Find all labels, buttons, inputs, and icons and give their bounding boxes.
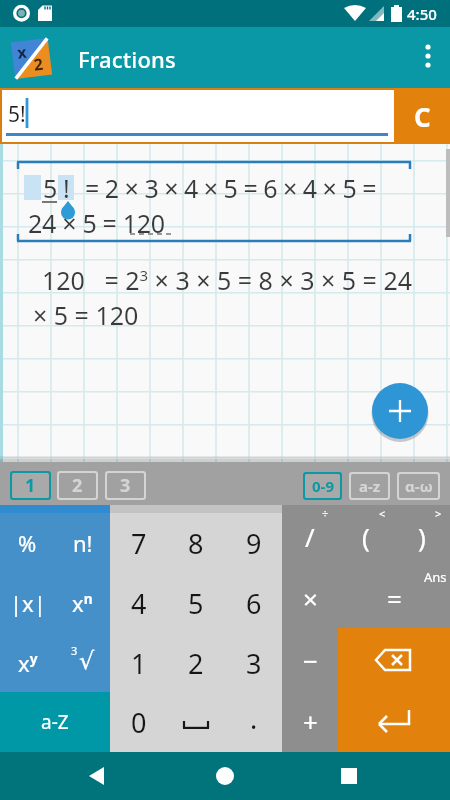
- staticText: α-ω: [405, 476, 433, 496]
- staticText: 5: [188, 585, 204, 622]
- staticText: (: [362, 519, 370, 554]
- button[interactable]: xn: [55, 573, 110, 633]
- button[interactable]: /: [282, 505, 338, 567]
- button[interactable]: [410, 37, 446, 79]
- staticText: 24 × 5 = 120: [28, 206, 165, 240]
- staticText: 3: [246, 645, 262, 682]
- staticText: 3: [71, 643, 78, 658]
- button[interactable]: 0-9: [303, 472, 342, 500]
- staticText: !: [63, 171, 70, 205]
- staticText: ×: [303, 581, 318, 616]
- button[interactable]: 4: [110, 573, 167, 633]
- staticText: xn: [72, 588, 93, 618]
- staticText: n!: [73, 528, 93, 558]
- button[interactable]: [372, 383, 428, 439]
- staticText: =: [387, 581, 402, 616]
- staticText: .: [250, 700, 258, 737]
- staticText: ÷: [322, 506, 329, 521]
- staticText: 5: [43, 171, 58, 205]
- staticText: 6: [246, 585, 262, 622]
- staticText: 9: [246, 525, 262, 562]
- button[interactable]: C: [394, 88, 450, 144]
- staticText: 5!: [8, 100, 26, 129]
- staticText: = 2 × 3 × 4 × 5 = 6 × 4 × 5 =: [85, 171, 377, 205]
- button[interactable]: 1: [110, 633, 167, 693]
- button[interactable]: 3: [105, 471, 146, 500]
- staticText: Fractions: [78, 44, 176, 74]
- button[interactable]: 6: [225, 573, 282, 633]
- staticText: >: [435, 506, 442, 521]
- button[interactable]: [75, 752, 123, 800]
- button[interactable]: a-z: [349, 472, 390, 500]
- staticText: C: [414, 99, 431, 134]
- button[interactable]: (: [338, 505, 394, 567]
- button[interactable]: α-ω: [397, 472, 440, 500]
- staticText: Ans: [424, 568, 447, 586]
- button[interactable]: 7: [110, 513, 167, 573]
- staticText: 120 = 23 × 3 × 5 = 8 × 3 × 5 = 24: [42, 263, 412, 297]
- button[interactable]: |x|: [0, 573, 55, 633]
- staticText: 4:50: [407, 4, 437, 24]
- staticText: 7: [131, 525, 147, 562]
- button[interactable]: xy: [0, 633, 55, 693]
- button[interactable]: +: [282, 690, 338, 752]
- staticText: 8: [188, 525, 204, 562]
- button[interactable]: [201, 752, 249, 800]
- button[interactable]: 8: [167, 513, 224, 573]
- button[interactable]: 2: [167, 633, 224, 693]
- staticText: x: [16, 41, 28, 64]
- staticText: 1: [25, 473, 36, 498]
- staticText: × 5 = 120: [33, 298, 139, 332]
- button[interactable]: ×: [282, 567, 338, 629]
- button[interactable]: %: [0, 513, 55, 573]
- button[interactable]: 1: [10, 471, 51, 500]
- staticText: 3: [120, 473, 131, 498]
- button[interactable]: 5: [167, 573, 224, 633]
- staticText: |x|: [10, 588, 46, 618]
- staticText: 2: [32, 53, 45, 76]
- button[interactable]: 0: [110, 692, 167, 752]
- staticText: 0-9: [312, 476, 334, 496]
- staticText: a-z: [359, 476, 381, 496]
- staticText: +: [303, 704, 318, 739]
- button[interactable]: −: [282, 629, 338, 691]
- button[interactable]: 3: [225, 633, 282, 693]
- button[interactable]: [325, 752, 373, 800]
- staticText: √: [79, 647, 95, 675]
- staticText: a-Z: [41, 709, 69, 735]
- button[interactable]: √: [55, 633, 110, 693]
- button[interactable]: 2: [57, 471, 98, 500]
- button[interactable]: a-Z: [0, 692, 110, 752]
- staticText: 0: [131, 704, 147, 741]
- staticText: −: [303, 643, 318, 678]
- staticText: ): [418, 519, 426, 554]
- button[interactable]: [167, 692, 224, 752]
- staticText: 1: [131, 645, 147, 682]
- button[interactable]: n!: [55, 513, 110, 573]
- button[interactable]: [338, 629, 450, 691]
- button[interactable]: 9: [225, 513, 282, 573]
- button[interactable]: ): [394, 505, 450, 567]
- staticText: 2: [188, 645, 204, 682]
- staticText: %: [18, 528, 37, 558]
- staticText: 4: [131, 585, 147, 622]
- button[interactable]: [338, 690, 450, 752]
- staticText: /: [305, 519, 315, 554]
- button[interactable]: =: [338, 567, 450, 629]
- staticText: <: [379, 506, 386, 521]
- button[interactable]: .: [225, 692, 282, 752]
- staticText: xy: [18, 648, 38, 678]
- staticText: 2: [72, 473, 83, 498]
